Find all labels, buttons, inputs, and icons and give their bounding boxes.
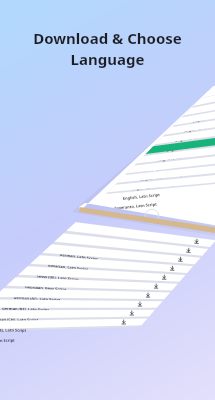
staticText: Download & Choose Language — [33, 28, 182, 70]
